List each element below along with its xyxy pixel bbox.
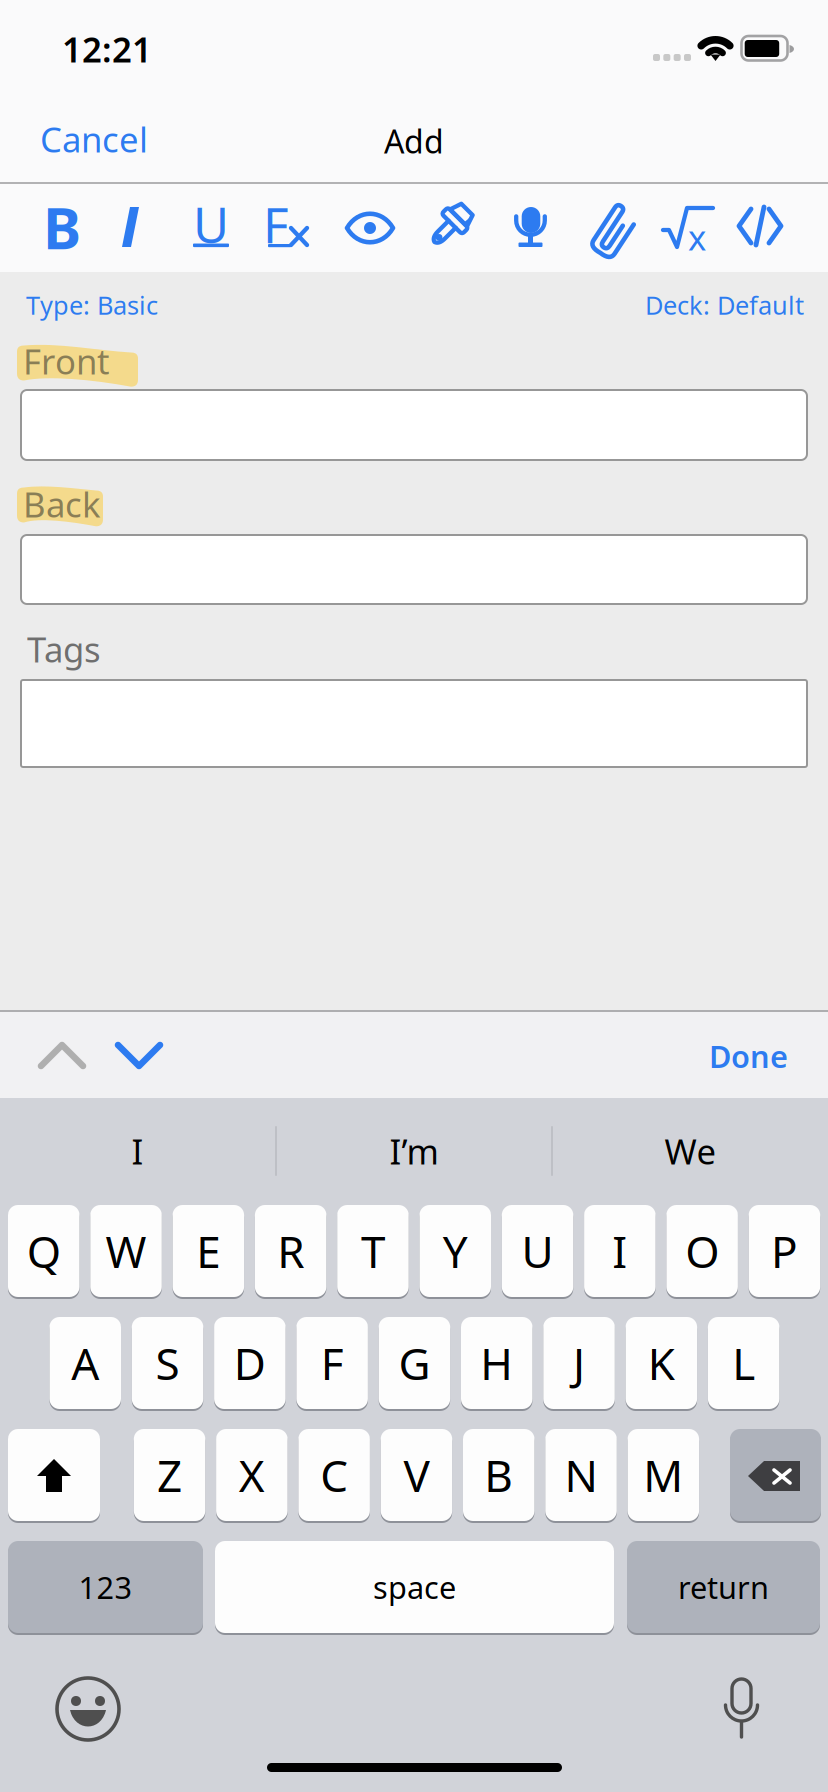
button[interactable]: P [749,1205,820,1299]
staticText: x [688,214,706,260]
button[interactable]: T [337,1205,409,1299]
button[interactable]: Paint [0,184,828,272]
button[interactable]: Preview [0,184,828,272]
staticText: U [193,191,229,256]
staticText: Done [709,1036,788,1076]
button[interactable]: N [545,1429,617,1523]
staticText: K [648,1334,675,1392]
staticText: U [521,1222,553,1280]
staticText: H [480,1334,513,1392]
button[interactable]: G [379,1317,450,1411]
button[interactable]: B [463,1429,534,1523]
staticText: O [685,1222,719,1280]
button[interactable]: Italic [0,184,828,272]
staticText: C [320,1446,348,1504]
button[interactable]: Underline [0,184,828,272]
staticText: J [573,1334,585,1392]
staticText: P [771,1222,798,1280]
button[interactable]: We [553,1126,828,1176]
button[interactable]: Tags field [0,272,828,1010]
staticText: R [277,1222,304,1280]
staticText: Tags [27,626,101,672]
button[interactable]: I [0,1126,275,1176]
staticText: Z [157,1446,182,1504]
button[interactable]: Shift [8,1429,100,1523]
button[interactable]: Previous field [0,1010,828,1098]
button[interactable]: X [216,1429,288,1523]
button[interactable]: Done [0,1010,828,1098]
button[interactable]: H [461,1317,532,1411]
button[interactable]: O [666,1205,738,1299]
staticText: T [361,1222,385,1280]
button[interactable]: L [708,1317,779,1411]
button[interactable]: V [381,1429,452,1523]
staticText: S [156,1334,180,1392]
staticText: W [105,1222,146,1280]
staticText: V [403,1446,429,1504]
button[interactable]: Bold [0,184,828,272]
button[interactable]: space [215,1541,614,1635]
button[interactable]: Dictate [720,1679,764,1741]
staticText: Cancel [40,116,148,162]
button[interactable]: Q [8,1205,79,1299]
button[interactable]: Z [134,1429,205,1523]
button[interactable]: I [584,1205,656,1299]
button[interactable]: Cancel [0,88,828,183]
staticText: 123 [78,1567,132,1607]
staticText: E [196,1222,220,1280]
button[interactable]: 123 [8,1541,203,1635]
staticText: Q [27,1222,61,1280]
staticText: I [131,1128,143,1174]
button[interactable]: I’m [277,1126,551,1176]
button[interactable]: J [543,1317,615,1411]
button[interactable]: Math [0,184,828,272]
staticText: Deck: Default [645,288,804,322]
button[interactable]: A [49,1317,121,1411]
staticText: G [398,1334,430,1392]
staticText: Add [384,120,444,162]
button[interactable]: S [132,1317,203,1411]
staticText: I [612,1222,627,1280]
button[interactable]: E [173,1205,244,1299]
staticText: F [321,1334,344,1392]
staticText: I’m [389,1128,438,1174]
button[interactable]: C [298,1429,370,1523]
staticText: B [43,189,81,265]
button[interactable]: Edit HTML [0,184,828,272]
button[interactable]: return [627,1541,820,1635]
staticText: Y [443,1222,468,1280]
button[interactable]: W [90,1205,162,1299]
button[interactable]: Record audio [0,184,828,272]
button[interactable]: Delete [730,1429,821,1523]
staticText: N [564,1446,597,1504]
button[interactable]: Type: Basic [0,272,828,1010]
staticText: Type: Basic [26,288,158,322]
button[interactable]: Y [419,1205,491,1299]
button[interactable]: Front field [0,272,828,1010]
button[interactable]: R [255,1205,326,1299]
button[interactable]: Attach media [0,184,828,272]
button[interactable]: Deck: Default [0,272,828,1010]
button[interactable]: Back field [0,272,828,1010]
button[interactable]: D [214,1317,286,1411]
staticText: space [373,1567,456,1607]
staticText: B [484,1446,513,1504]
button[interactable]: F [296,1317,368,1411]
staticText: L [732,1334,755,1392]
staticText: return [678,1567,769,1607]
staticText: A [71,1334,99,1392]
button[interactable]: K [626,1317,697,1411]
button[interactable]: Next field [0,1010,828,1098]
button[interactable]: Clear formatting [0,184,828,272]
staticText: Front [23,338,110,384]
staticText: We [664,1128,716,1174]
staticText: 12:21 [62,26,152,72]
staticText: M [643,1446,683,1504]
staticText: F [263,191,289,257]
staticText: D [234,1334,266,1392]
button[interactable]: M [628,1429,699,1523]
button[interactable]: Emoji [57,1678,121,1742]
button[interactable]: U [502,1205,573,1299]
staticText: X [239,1446,265,1504]
staticText: Back [23,481,101,527]
